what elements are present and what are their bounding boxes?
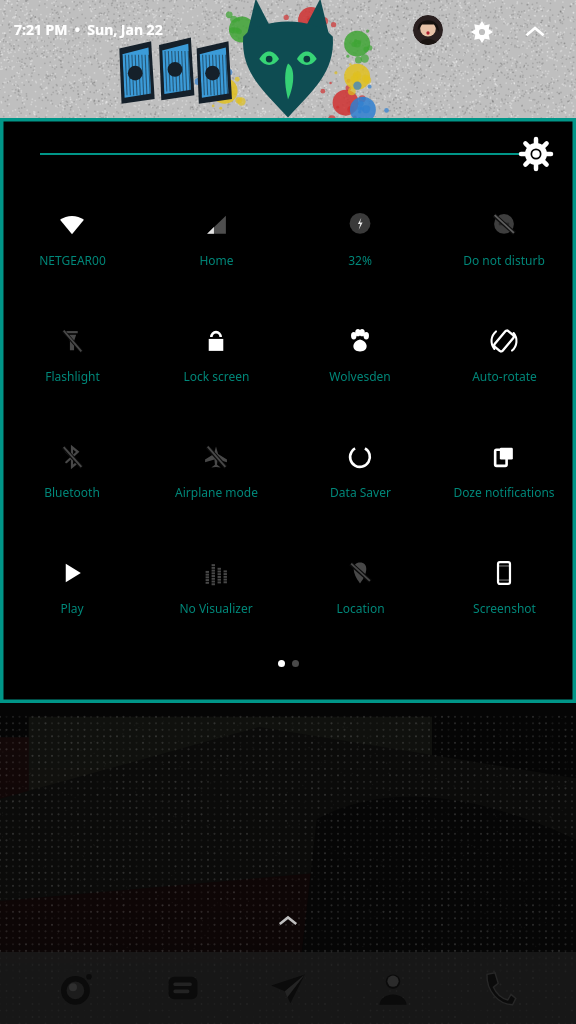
staticText: Auto-rotate — [472, 368, 537, 384]
button[interactable]: Open app drawer — [271, 904, 305, 938]
button[interactable]: Phone — [471, 960, 527, 1016]
button[interactable]: Flashlight — [0, 306, 144, 422]
staticText: NETGEAR00 — [39, 252, 106, 268]
button[interactable]: Lock screen — [144, 306, 288, 422]
button[interactable]: Messages — [155, 960, 211, 1016]
staticText: Airplane mode — [175, 484, 258, 500]
staticText: Doze notifications — [453, 484, 555, 500]
staticText: Bluetooth — [44, 484, 100, 500]
button[interactable]: Contacts — [365, 960, 421, 1016]
button[interactable]: Auto-rotate — [432, 306, 576, 422]
button[interactable]: Telegram — [260, 960, 316, 1016]
staticText: Location — [336, 600, 385, 616]
staticText: Wolvesden — [329, 368, 391, 384]
staticText: 7:21 PM • Sun, Jan 22 — [14, 20, 163, 39]
button[interactable]: Camera — [49, 960, 105, 1016]
button[interactable]: Doze notifications — [432, 422, 576, 538]
staticText: Play — [60, 600, 84, 616]
button[interactable]: NETGEAR00 — [0, 190, 144, 306]
button[interactable]: Do not disturb — [432, 190, 576, 306]
button[interactable]: Brightness — [0, 118, 576, 190]
button[interactable]: Home — [144, 190, 288, 306]
staticText: Data Saver — [330, 484, 391, 500]
staticText: Home — [199, 252, 234, 268]
staticText: Do not disturb — [463, 252, 545, 268]
button[interactable]: Play — [0, 538, 144, 654]
staticText: Screenshot — [473, 600, 536, 616]
button[interactable]: Data Saver — [288, 422, 432, 538]
staticText: No Visualizer — [179, 600, 253, 616]
staticText: Lock screen — [183, 368, 250, 384]
staticText: Flashlight — [45, 368, 100, 384]
button[interactable]: Wolvesden — [288, 306, 432, 422]
button[interactable]: No Visualizer — [144, 538, 288, 654]
button[interactable]: Location — [288, 538, 432, 654]
button[interactable]: User profile — [413, 15, 443, 45]
button[interactable]: Settings — [466, 16, 498, 48]
button[interactable]: 32% — [288, 190, 432, 306]
staticText: 32% — [348, 252, 372, 268]
button[interactable]: Collapse — [519, 16, 551, 48]
button[interactable]: Screenshot — [432, 538, 576, 654]
button[interactable]: Bluetooth — [0, 422, 144, 538]
button[interactable]: Airplane mode — [144, 422, 288, 538]
